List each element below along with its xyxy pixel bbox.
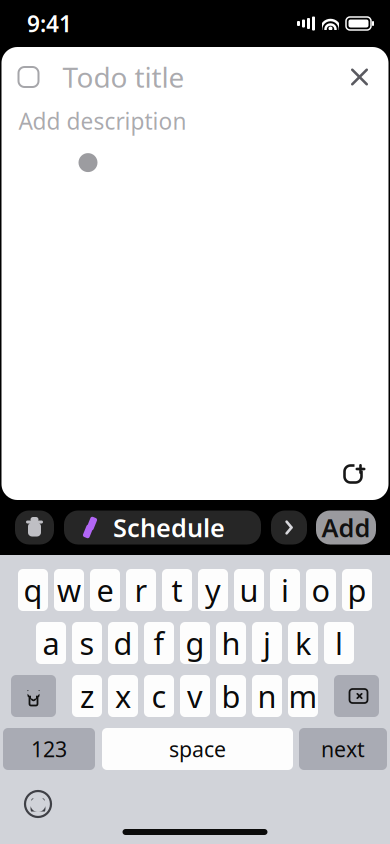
staticText: b bbox=[221, 676, 240, 716]
staticText: n bbox=[257, 676, 276, 716]
staticText: 9:41 bbox=[27, 8, 72, 38]
staticText: Todo title bbox=[62, 58, 184, 96]
staticText: a bbox=[42, 623, 59, 663]
staticText: g bbox=[185, 623, 204, 663]
staticText: v bbox=[187, 676, 203, 716]
staticText: s bbox=[79, 623, 94, 663]
button[interactable]: r bbox=[126, 569, 156, 611]
staticText: k bbox=[295, 623, 311, 663]
button[interactable]: next bbox=[299, 728, 387, 770]
staticText: m bbox=[288, 676, 317, 716]
button[interactable]: h bbox=[216, 622, 246, 664]
staticText: next bbox=[321, 735, 365, 763]
button[interactable]: l bbox=[324, 622, 354, 664]
button[interactable]: q bbox=[18, 569, 48, 611]
staticText: w bbox=[57, 570, 81, 610]
button[interactable]: p bbox=[342, 569, 372, 611]
button[interactable]: f bbox=[144, 622, 174, 664]
button[interactable]: Delete bbox=[334, 675, 379, 717]
staticText: e bbox=[96, 570, 113, 610]
button[interactable]: Mark complete bbox=[10, 59, 46, 95]
button[interactable]: j bbox=[252, 622, 282, 664]
staticText: c bbox=[151, 676, 166, 716]
staticText: z bbox=[80, 676, 94, 716]
staticText: Add bbox=[321, 511, 370, 544]
button[interactable]: Add subtask bbox=[334, 452, 374, 492]
button[interactable]: Schedule bbox=[64, 510, 261, 544]
button[interactable]: m bbox=[288, 675, 318, 717]
button[interactable]: c bbox=[144, 675, 174, 717]
staticText: q bbox=[23, 570, 42, 610]
button[interactable]: v bbox=[180, 675, 210, 717]
staticText: o bbox=[311, 570, 330, 610]
button[interactable]: z bbox=[72, 675, 102, 717]
staticText: f bbox=[153, 623, 164, 663]
button[interactable]: s bbox=[72, 622, 102, 664]
staticText: t bbox=[171, 570, 182, 610]
button[interactable]: x bbox=[108, 675, 138, 717]
button[interactable]: Shift bbox=[11, 675, 56, 717]
staticText: 123 bbox=[31, 735, 67, 763]
staticText: Add description bbox=[18, 106, 186, 136]
button[interactable]: 123 bbox=[3, 728, 95, 770]
button[interactable]: t bbox=[162, 569, 192, 611]
button[interactable]: g bbox=[180, 622, 210, 664]
button[interactable]: n bbox=[252, 675, 282, 717]
button[interactable]: y bbox=[198, 569, 228, 611]
button[interactable]: Add bbox=[316, 510, 376, 544]
button[interactable]: d bbox=[108, 622, 138, 664]
staticText: d bbox=[113, 623, 132, 663]
staticText: space bbox=[169, 735, 226, 763]
button[interactable]: i bbox=[270, 569, 300, 611]
button[interactable]: o bbox=[306, 569, 336, 611]
staticText: r bbox=[134, 570, 147, 610]
button[interactable]: u bbox=[234, 569, 264, 611]
button[interactable]: e bbox=[90, 569, 120, 611]
button[interactable]: a bbox=[36, 622, 66, 664]
button[interactable]: More options bbox=[271, 510, 307, 544]
staticText: l bbox=[335, 623, 343, 663]
staticText: p bbox=[347, 570, 366, 610]
staticText: i bbox=[281, 570, 289, 610]
staticText: u bbox=[239, 570, 258, 610]
button[interactable]: Emoji bbox=[21, 787, 55, 821]
staticText: Schedule bbox=[113, 511, 225, 544]
staticText: h bbox=[221, 623, 240, 663]
button[interactable]: space bbox=[102, 728, 293, 770]
button[interactable]: b bbox=[216, 675, 246, 717]
staticText: x bbox=[115, 676, 131, 716]
staticText: y bbox=[205, 570, 221, 610]
button[interactable]: w bbox=[54, 569, 84, 611]
button[interactable]: Close bbox=[340, 58, 378, 96]
button[interactable]: k bbox=[288, 622, 318, 664]
button[interactable]: Delete bbox=[15, 510, 54, 544]
staticText: j bbox=[263, 623, 271, 663]
